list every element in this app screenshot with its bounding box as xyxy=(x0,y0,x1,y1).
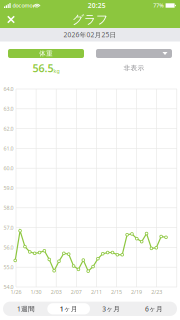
staticText: 20:25 xyxy=(88,1,106,10)
staticText: グラフ xyxy=(72,12,108,27)
staticText: 56.5 xyxy=(32,61,53,75)
staticText: 61.0 xyxy=(3,145,13,152)
staticText: 2/19 xyxy=(131,288,142,296)
staticText: 2/23 xyxy=(151,288,162,296)
staticText: 1週間 xyxy=(17,304,35,313)
staticText: docomo xyxy=(12,2,32,9)
staticText: 2/11 xyxy=(91,288,102,296)
staticText: 非表示 xyxy=(123,64,144,72)
staticText: 体重 xyxy=(39,49,53,58)
staticText: 55.0 xyxy=(3,264,13,271)
staticText: 2/15 xyxy=(111,288,122,296)
staticText: 2/03 xyxy=(51,288,62,296)
staticText: 59.0 xyxy=(3,184,13,192)
button[interactable]: 1週間 xyxy=(5,303,47,314)
button[interactable]: 項目を選択 xyxy=(96,49,172,58)
button[interactable]: 体重 xyxy=(8,49,84,58)
staticText: 64.0 xyxy=(3,85,13,93)
staticText: 1ヶ月 xyxy=(60,304,78,313)
button[interactable]: 3ヶ月 xyxy=(90,303,133,314)
button[interactable]: 1ヶ月 xyxy=(47,303,90,314)
staticText: 57.0 xyxy=(3,224,13,231)
staticText: 6ヶ月 xyxy=(145,304,163,313)
staticText: 1/30 xyxy=(31,288,42,296)
staticText: 63.0 xyxy=(3,105,13,112)
staticText: 58.0 xyxy=(3,204,13,211)
button[interactable]: 閉じる xyxy=(0,11,22,28)
staticText: 77% xyxy=(153,2,164,9)
staticText: 2/07 xyxy=(71,288,82,296)
staticText: 60.0 xyxy=(3,165,13,172)
staticText: 56.0 xyxy=(3,244,13,251)
staticText: kg xyxy=(53,67,59,75)
staticText: 2026年02月25日 xyxy=(63,30,116,39)
staticText: 1/26 xyxy=(10,288,21,296)
button[interactable]: 6ヶ月 xyxy=(133,303,175,314)
staticText: 54.0 xyxy=(3,283,13,291)
staticText: 62.0 xyxy=(3,125,13,132)
staticText: 3ヶ月 xyxy=(102,304,120,313)
